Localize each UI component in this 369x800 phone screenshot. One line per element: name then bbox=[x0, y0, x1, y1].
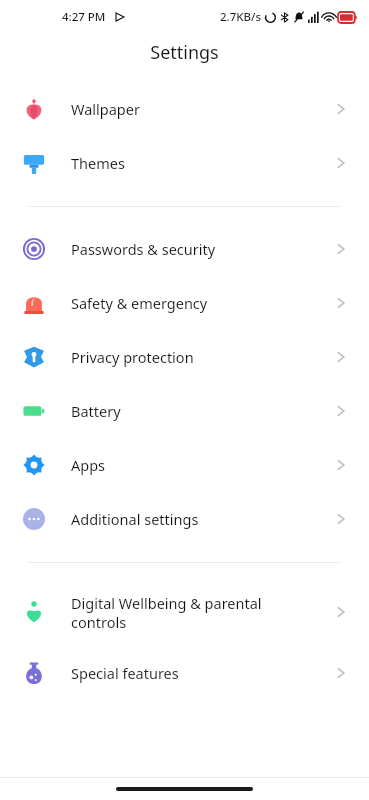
staticText: Wallpaper bbox=[71, 99, 333, 119]
staticText: Settings bbox=[150, 40, 219, 65]
staticText: Special features bbox=[71, 663, 333, 683]
staticText: Passwords & security bbox=[71, 239, 333, 259]
button[interactable]: Special features bbox=[0, 646, 369, 700]
button[interactable]: Wallpaper bbox=[0, 82, 369, 136]
button[interactable]: Safety & emergency bbox=[0, 276, 369, 330]
staticText: Battery bbox=[71, 401, 333, 421]
button[interactable]: Battery bbox=[0, 384, 369, 438]
staticText: Safety & emergency bbox=[71, 293, 333, 313]
button[interactable]: Additional settings bbox=[0, 492, 369, 546]
staticText: Privacy protection bbox=[71, 347, 333, 367]
staticText: Digital Wellbeing & parental controls bbox=[71, 593, 333, 632]
staticText: 2.7KB/s bbox=[220, 9, 262, 25]
button[interactable]: Privacy protection bbox=[0, 330, 369, 384]
button[interactable]: Passwords & security bbox=[0, 222, 369, 276]
staticText: Apps bbox=[71, 455, 333, 475]
button[interactable]: Themes bbox=[0, 136, 369, 190]
button[interactable]: Apps bbox=[0, 438, 369, 492]
staticText: Themes bbox=[71, 153, 333, 173]
staticText: 4:27 PM bbox=[62, 9, 106, 25]
button[interactable]: Digital Wellbeing & parental controls bbox=[0, 578, 369, 646]
staticText: Additional settings bbox=[71, 509, 333, 529]
